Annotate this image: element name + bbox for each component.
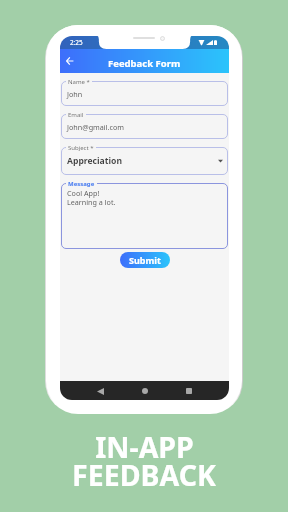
staticText: FEEDBACK [72, 456, 216, 495]
staticText: Message [68, 180, 95, 188]
button[interactable]: Submit [120, 252, 170, 268]
button[interactable]: Back [93, 384, 107, 398]
staticText: Name * [68, 78, 90, 86]
button[interactable]: Back [62, 53, 78, 69]
button[interactable]: Home [138, 384, 152, 398]
staticText: Appreciation [67, 155, 123, 167]
button[interactable]: Recent apps [182, 384, 196, 398]
button[interactable]: Appreciation [61, 147, 228, 175]
staticText: Email [68, 111, 84, 119]
staticText: 2:25 [70, 38, 83, 47]
staticText: John@gmail.com [67, 122, 124, 132]
staticText: IN-APP [95, 428, 194, 467]
staticText: Submit [129, 254, 161, 266]
button[interactable]: John [61, 81, 228, 106]
button[interactable]: John@gmail.com [61, 114, 228, 139]
staticText: Subject * [68, 144, 94, 152]
staticText: Feedback Form [108, 57, 181, 70]
staticText: Cool App! Learning a lot. [67, 188, 116, 207]
staticText: John [67, 89, 83, 99]
button[interactable]: Cool App! Learning a lot. [61, 183, 228, 249]
